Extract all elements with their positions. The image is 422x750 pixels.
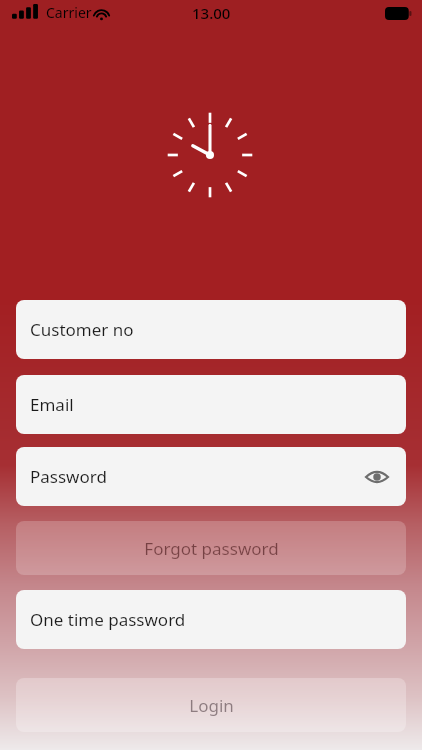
button[interactable]: One time password [16,590,406,649]
staticText: Forgot password [144,537,279,560]
staticText: Login [189,694,234,717]
button[interactable]: Login [16,678,406,732]
button[interactable]: Password [16,447,406,506]
staticText: One time password [30,608,186,631]
staticText: 13.00 [192,3,231,23]
other: Clock logo [165,110,255,200]
staticText: Customer no [30,318,134,341]
button[interactable]: Show password [360,460,394,494]
button[interactable]: Customer no [16,300,406,359]
button[interactable]: Email [16,375,406,434]
button[interactable]: Forgot password [16,521,406,575]
staticText: Password [30,465,107,488]
staticText: Carrier [46,3,92,22]
staticText: Email [30,393,74,416]
